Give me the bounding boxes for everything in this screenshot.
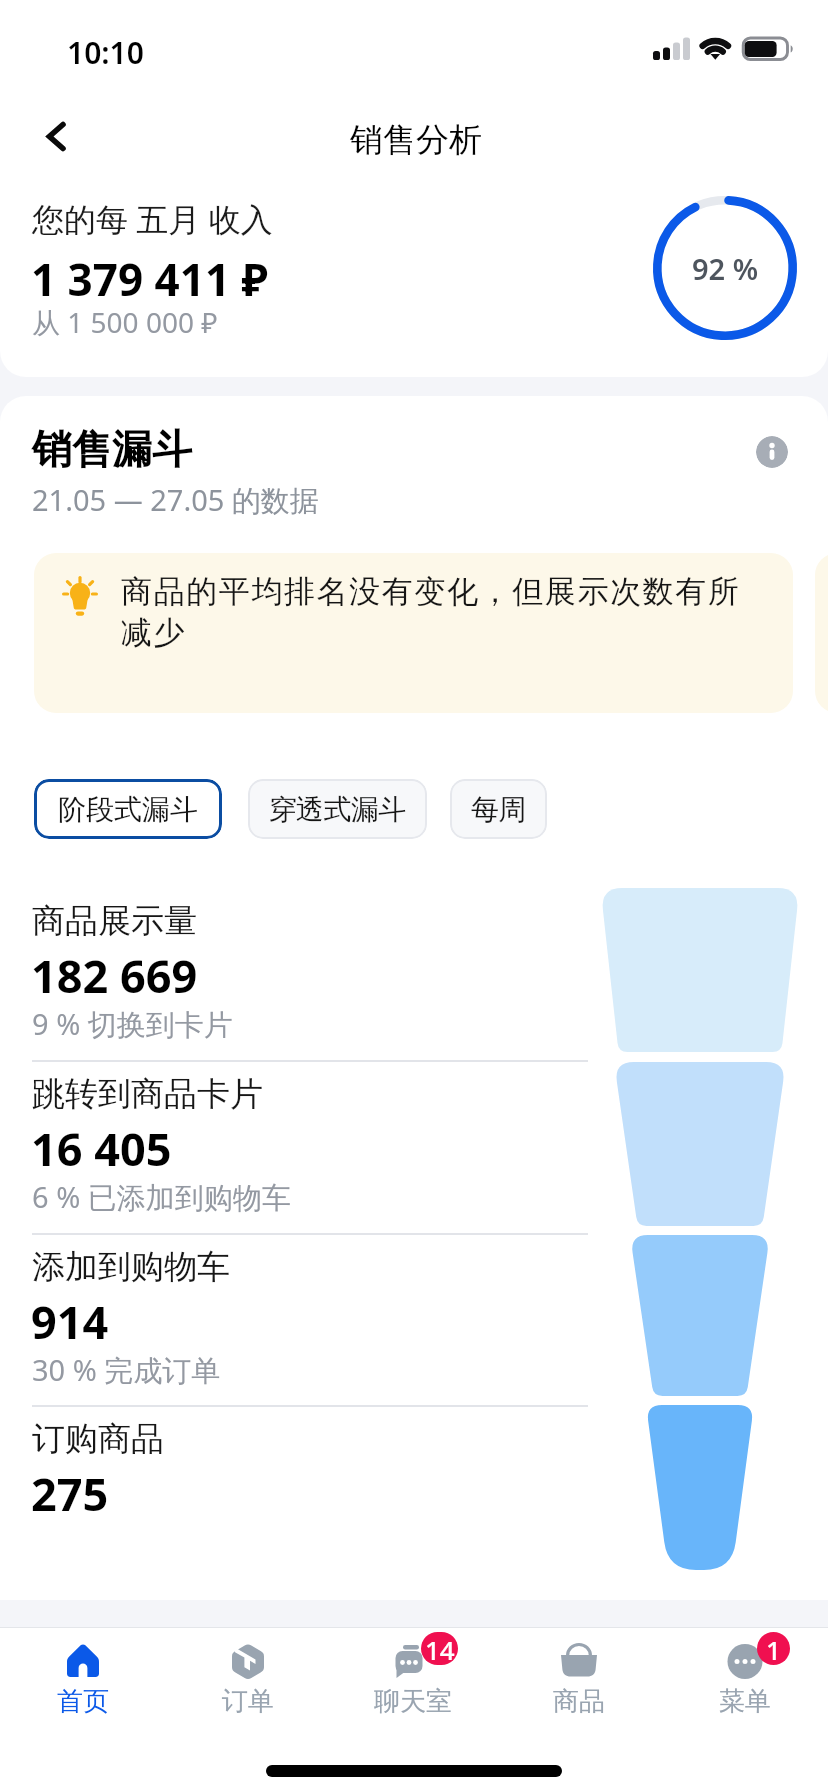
button[interactable]: 阶段式漏斗 — [34, 779, 222, 839]
button[interactable]: 14 — [330, 1627, 496, 1700]
staticText: 21.05 — 27.05 的数据 — [32, 480, 319, 520]
staticText: 275 — [31, 1463, 109, 1524]
staticText: 182 669 — [31, 945, 198, 1006]
button[interactable]: Back — [17, 100, 89, 172]
staticText: 9 % 切换到卡片 — [32, 1004, 233, 1044]
staticText: 6 % 已添加到购物车 — [32, 1177, 291, 1217]
button[interactable]: 穿透式漏斗 — [248, 779, 427, 839]
staticText: 14 — [425, 1632, 455, 1665]
staticText: 阶段式漏斗 — [58, 792, 198, 827]
staticText: 首页 — [57, 1685, 109, 1718]
staticText: 30 % 完成订单 — [32, 1350, 221, 1390]
staticText: 销售漏斗 — [32, 424, 192, 474]
button[interactable]: Info — [756, 436, 788, 468]
button[interactable]: 商品展示量 — [0, 900, 600, 1046]
button[interactable]: 首页 — [0, 1627, 165, 1700]
staticText: 每周 — [471, 792, 526, 827]
staticText: 聊天室 — [374, 1685, 452, 1718]
staticText: 订购商品 — [32, 1418, 164, 1460]
staticText: 您的每 五月 收入 — [32, 197, 273, 241]
staticText: 订单 — [222, 1685, 274, 1718]
staticText: 销售分析 — [350, 119, 482, 161]
staticText: 穿透式漏斗 — [269, 792, 406, 827]
staticText: 商品的平均排名没有变化，但展示次数有所减少 — [121, 572, 751, 652]
button[interactable]: 每周 — [450, 779, 547, 839]
staticText: 菜单 — [719, 1685, 771, 1718]
staticText: 添加到购物车 — [32, 1246, 230, 1288]
button[interactable]: 订购商品 — [0, 1418, 600, 1524]
button[interactable]: 商品 — [496, 1627, 662, 1700]
staticText: 92 % — [692, 249, 759, 288]
button[interactable]: 1 — [662, 1627, 828, 1700]
button[interactable]: 跳转到商品卡片 — [0, 1073, 600, 1219]
staticText: 商品 — [553, 1685, 605, 1718]
staticText: 商品展示量 — [32, 900, 197, 942]
staticText: 从 1 500 000 ₽ — [32, 303, 218, 341]
staticText: 914 — [31, 1291, 109, 1352]
button[interactable]: 添加到购物车 — [0, 1246, 600, 1392]
staticText: 10:10 — [67, 32, 144, 73]
staticText: 1 — [766, 1632, 781, 1665]
staticText: 16 405 — [31, 1118, 172, 1179]
button[interactable]: 订单 — [165, 1627, 330, 1700]
staticText: 跳转到商品卡片 — [32, 1073, 263, 1115]
staticText: 1 379 411 ₽ — [31, 249, 268, 309]
button[interactable]: 商品的平均排名没有变化，但展示次数有所减少 — [34, 553, 793, 713]
